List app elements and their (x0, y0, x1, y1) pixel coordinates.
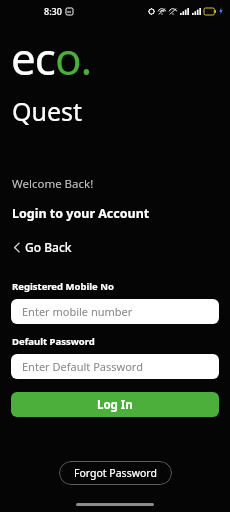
staticText: Go Back (25, 239, 72, 255)
staticText: Welcome Back! (12, 176, 94, 192)
staticText: Forgot Password (74, 466, 157, 480)
staticText: Login to your Account (12, 205, 150, 222)
staticText: Log In (97, 397, 133, 413)
staticText: Default Password (12, 335, 95, 348)
staticText: eco. (11, 28, 92, 88)
button[interactable]: Forgot Password (59, 461, 172, 485)
staticText: Quest (12, 94, 83, 128)
button[interactable]: Go Back (10, 236, 74, 258)
staticText: 8:30 (44, 5, 62, 17)
staticText: Registered Mobile No (12, 280, 114, 293)
staticText: Enter Default Password (22, 359, 143, 374)
button[interactable]: Enter Default Password (11, 354, 219, 379)
button[interactable]: Log In (11, 392, 219, 417)
staticText: Enter mobile number (22, 304, 133, 319)
button[interactable]: Enter mobile number (11, 299, 219, 324)
